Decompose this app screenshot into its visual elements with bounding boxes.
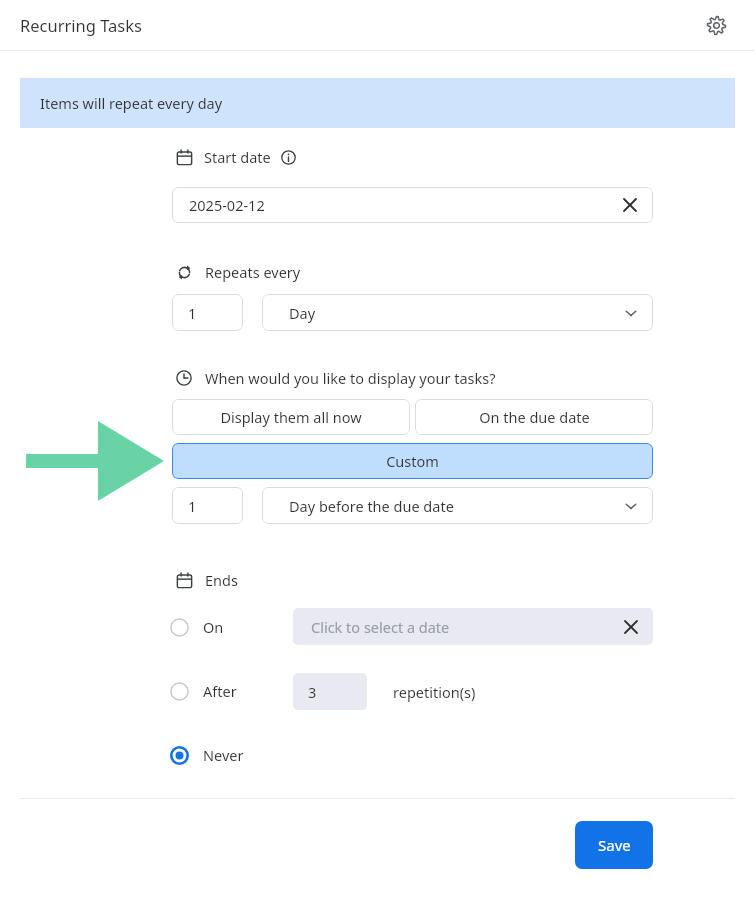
button[interactable]: 2025-02-12 [172, 187, 653, 223]
button[interactable]: Day [262, 294, 653, 331]
button[interactable]: 3 [293, 673, 367, 710]
staticText: repetition(s) [393, 682, 476, 702]
button[interactable]: Clear start date [617, 192, 643, 218]
staticText: Repeats every [205, 262, 301, 282]
staticText: After [203, 681, 237, 701]
staticText: On [203, 617, 224, 637]
button[interactable]: 1 [172, 487, 243, 524]
button[interactable]: Save [575, 821, 653, 869]
staticText: Display them all now [220, 407, 362, 427]
staticText: 3 [308, 682, 317, 702]
staticText: Ends [205, 570, 238, 590]
staticText: Start date [204, 147, 271, 167]
staticText: Items will repeat every day [40, 93, 223, 113]
button[interactable]: On the due date [415, 399, 653, 435]
button[interactable]: After [170, 676, 285, 706]
staticText: Click to select a date [311, 617, 450, 637]
staticText: 1 [188, 496, 197, 516]
staticText: Day before the due date [289, 496, 454, 516]
staticText: Save [598, 835, 631, 855]
button[interactable]: Day before the due date [262, 487, 653, 524]
staticText: 1 [188, 303, 197, 323]
staticText: When would you like to display your task… [205, 368, 496, 388]
staticText: 2025-02-12 [189, 195, 265, 215]
button[interactable]: Settings [702, 11, 730, 39]
button[interactable]: On [170, 612, 280, 642]
staticText: Custom [386, 451, 439, 471]
button[interactable]: 1 [172, 294, 243, 331]
staticText: Recurring Tasks [20, 14, 142, 36]
button[interactable]: Display them all now [172, 399, 410, 435]
button[interactable]: Never [170, 740, 290, 770]
staticText: On the due date [479, 407, 590, 427]
staticText: Never [203, 745, 244, 765]
staticText: Day [289, 303, 316, 323]
button[interactable]: Click to select a date [293, 608, 653, 645]
button[interactable]: Custom [172, 443, 653, 479]
